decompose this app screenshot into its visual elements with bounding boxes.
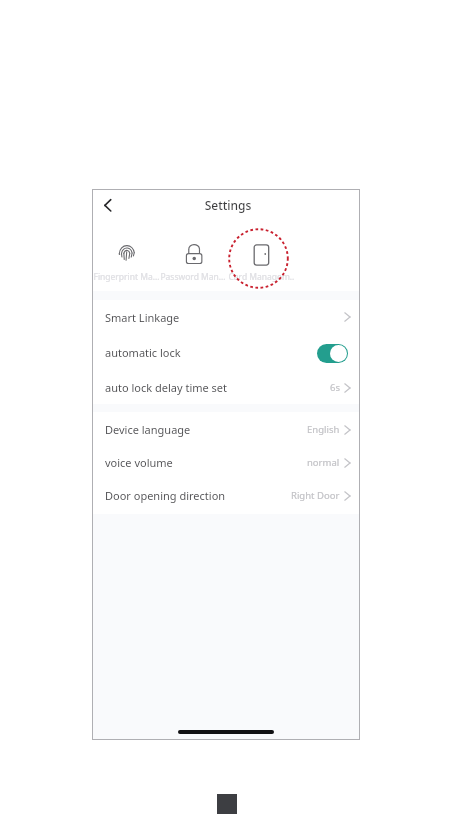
button[interactable]: automatic lock <box>317 344 348 363</box>
staticText: normal <box>307 456 340 469</box>
button[interactable]: Card Managem… <box>228 243 294 283</box>
staticText: Door opening direction <box>105 488 226 503</box>
staticText: English <box>307 423 340 436</box>
button[interactable]: Device language <box>93 412 359 446</box>
staticText: Card Managem… <box>228 271 294 283</box>
staticText: automatic lock <box>105 345 181 360</box>
staticText: Smart Linkage <box>105 310 180 325</box>
staticText: Device language <box>105 422 191 437</box>
staticText: Right Door <box>291 489 340 502</box>
staticText: 6s <box>330 381 340 394</box>
button[interactable]: Door opening direction <box>93 478 359 512</box>
staticText: Fingerprint Ma… <box>93 271 159 283</box>
button[interactable]: voice volume <box>93 445 359 479</box>
button[interactable]: auto lock delay time set <box>93 370 359 404</box>
button[interactable]: Password Man… <box>160 243 226 283</box>
button[interactable]: Fingerprint Ma… <box>93 243 159 283</box>
staticText: Settings <box>95 197 361 213</box>
staticText: voice volume <box>105 455 173 470</box>
button[interactable]: automatic lock <box>93 335 359 369</box>
button[interactable]: Smart Linkage <box>93 300 359 334</box>
staticText: auto lock delay time set <box>105 380 228 395</box>
staticText: Password Man… <box>160 271 226 283</box>
button[interactable]: Back <box>99 194 121 218</box>
